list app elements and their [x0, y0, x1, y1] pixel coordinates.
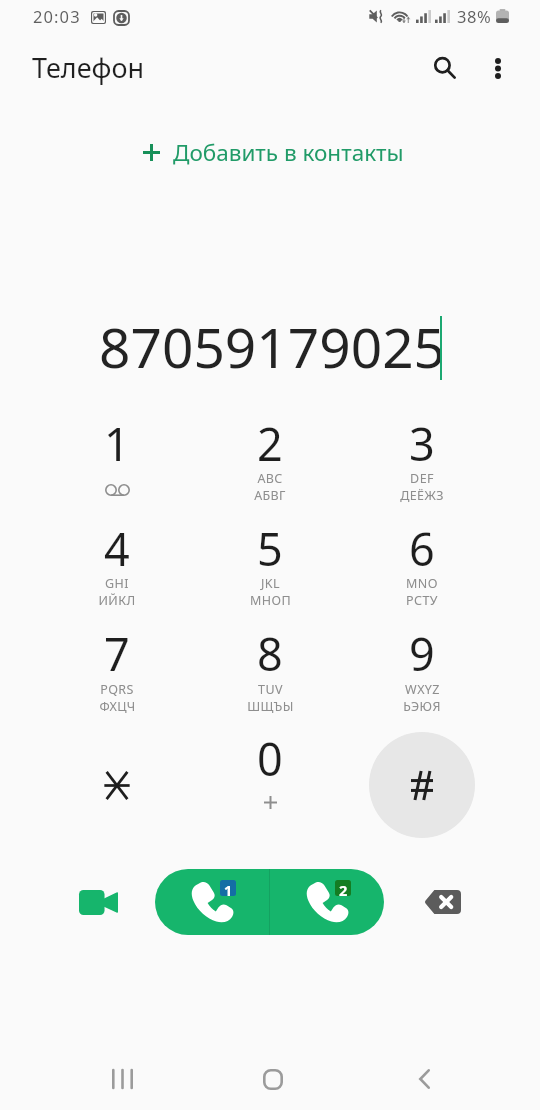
staticText: РСТУ: [406, 592, 438, 609]
staticText: JKL: [261, 575, 280, 592]
staticText: ABC: [257, 470, 283, 487]
button[interactable]: [369, 417, 475, 523]
button[interactable]: [217, 732, 323, 838]
button[interactable]: Back: [392, 1047, 456, 1110]
staticText: ИЙКЛ: [98, 592, 136, 609]
staticText: 1: [224, 880, 233, 896]
staticText: 6: [409, 518, 435, 579]
staticText: WXYZ: [405, 681, 440, 698]
staticText: 2: [339, 880, 348, 896]
button[interactable]: Call with SIM 2: [270, 869, 384, 935]
button[interactable]: [217, 627, 323, 733]
staticText: 7: [104, 623, 130, 684]
staticText: ШЩЪЫ: [247, 698, 294, 715]
button[interactable]: [369, 627, 475, 733]
button[interactable]: Video call: [72, 876, 124, 928]
button[interactable]: Recents: [90, 1047, 154, 1110]
staticText: 4: [104, 518, 130, 579]
staticText: 20:03: [33, 5, 81, 27]
button[interactable]: [64, 732, 170, 838]
staticText: 2: [257, 413, 283, 474]
button[interactable]: [64, 627, 170, 733]
button[interactable]: [64, 522, 170, 628]
staticText: MNO: [406, 575, 438, 592]
staticText: ЬЭЮЯ: [403, 698, 441, 715]
button[interactable]: Call with SIM 1: [155, 869, 269, 935]
staticText: 0: [257, 728, 283, 789]
staticText: ДЕЁЖЗ: [400, 487, 444, 504]
staticText: TUV: [258, 681, 283, 698]
button[interactable]: Backspace: [416, 876, 468, 928]
staticText: DEF: [410, 470, 434, 487]
button[interactable]: Добавить в контакты: [133, 131, 414, 174]
staticText: 87059179025: [99, 309, 446, 384]
button[interactable]: [217, 417, 323, 523]
staticText: Телефон: [32, 49, 145, 86]
staticText: АБВГ: [254, 487, 286, 504]
button[interactable]: Search: [422, 47, 470, 87]
staticText: 8: [257, 623, 283, 684]
staticText: GHI: [105, 575, 129, 592]
button[interactable]: Home: [241, 1047, 305, 1110]
button[interactable]: More options: [474, 47, 522, 87]
staticText: 3: [409, 413, 435, 474]
staticText: МНОП: [250, 592, 291, 609]
staticText: PQRS: [100, 681, 134, 698]
button[interactable]: [64, 417, 170, 523]
staticText: 9: [409, 623, 435, 684]
button[interactable]: [217, 522, 323, 628]
button[interactable]: [369, 522, 475, 628]
staticText: 1: [104, 413, 130, 474]
button[interactable]: [369, 732, 475, 838]
staticText: ФХЦЧ: [99, 698, 136, 715]
staticText: 38%: [457, 5, 492, 27]
staticText: 5: [257, 518, 283, 579]
staticText: Добавить в контакты: [173, 137, 404, 168]
